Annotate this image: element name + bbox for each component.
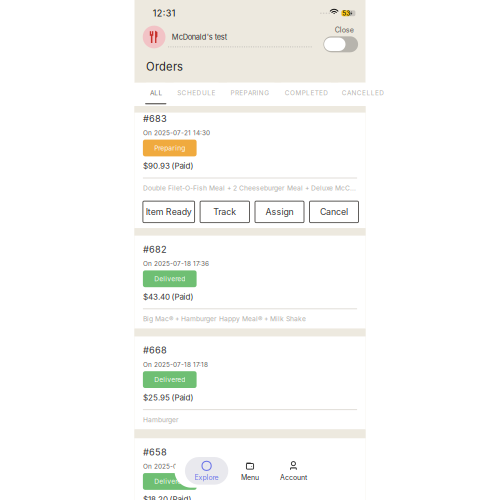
staticText: Track (213, 206, 236, 217)
staticText: (Paid) (171, 161, 193, 171)
staticText: Assign (265, 206, 293, 217)
staticText: Double Filet-O-Fish Meal + 2 Cheeseburge… (143, 184, 356, 192)
staticText: Delivered (154, 376, 185, 384)
staticText: McDonald's test (172, 32, 227, 41)
staticText: Explore (195, 473, 219, 482)
staticText: Delivered (154, 477, 185, 485)
staticText: (Paid) (171, 393, 193, 402)
staticText: COMPLETED (285, 89, 328, 97)
button[interactable]: Explore (185, 457, 228, 485)
staticText: #668 (143, 345, 167, 356)
staticText: Cancel (320, 206, 348, 217)
button[interactable]: Cancel (309, 201, 358, 223)
staticText: #682 (143, 244, 167, 255)
staticText: 12:31 (153, 8, 176, 19)
staticText: #683 (143, 113, 167, 124)
staticText: (Paid) (169, 494, 191, 500)
staticText: SCHEDULE (177, 89, 215, 97)
staticText: #658 (143, 446, 167, 458)
staticText: $18.20 (143, 494, 168, 500)
staticText: Menu (241, 473, 259, 482)
staticText: Account (280, 473, 307, 482)
staticText: Item Ready (146, 206, 192, 217)
button[interactable]: Menu (228, 457, 272, 485)
button[interactable]: CANCELLED (338, 83, 387, 106)
staticText: Big Mac® + Hamburger Happy Meal® + Milk … (143, 315, 306, 323)
staticText: $25.95 (143, 393, 170, 402)
staticText: $43.40 (143, 292, 170, 302)
button[interactable]: SCHEDULE (174, 83, 219, 106)
staticText: 53 (342, 9, 350, 17)
staticText: PREPARING (231, 89, 269, 97)
staticText: ALL (150, 89, 162, 97)
button[interactable]: Item Ready (143, 201, 195, 223)
staticText: Orders (146, 60, 183, 74)
staticText: On 2025-07-18 17:36 (143, 260, 209, 268)
staticText: On 2025-07-21 14:30 (143, 129, 210, 137)
staticText: Close (335, 26, 354, 34)
staticText: On 2025-07-18 16:02 (143, 462, 210, 470)
button[interactable]: Account (272, 457, 315, 485)
button[interactable]: Assign (255, 201, 304, 223)
button[interactable]: PREPARING (227, 83, 274, 106)
staticText: $90.93 (143, 161, 170, 171)
staticText: CANCELLED (342, 89, 384, 97)
button[interactable]: COMPLETED (281, 83, 331, 106)
staticText: Hamburger (143, 416, 179, 424)
staticText: Preparing (154, 144, 185, 152)
button[interactable]: Track (200, 201, 249, 223)
staticText: Delivered (154, 275, 185, 283)
button[interactable]: ALL (146, 83, 165, 106)
button[interactable]: Close (323, 23, 358, 52)
staticText: (Paid) (171, 292, 193, 302)
staticText: On 2025-07-18 17:18 (143, 361, 208, 368)
